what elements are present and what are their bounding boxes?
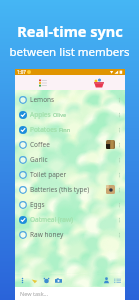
button[interactable]: Reminder [31,277,38,284]
staticText: New task... [20,290,48,297]
button[interactable]: Batteries (this type) [15,182,125,197]
button[interactable]: More options [19,277,26,284]
staticText: Finn [59,126,71,133]
button[interactable]: Toilet paper [15,167,125,182]
button[interactable]: Eggs [15,197,125,212]
button[interactable]: Apples [15,107,125,122]
staticText: between list members [9,44,130,60]
staticText: Oatmeal (raw) [30,215,74,224]
button[interactable]: Shopping basket [94,78,104,88]
button[interactable]: Oatmeal (raw) [15,212,125,227]
staticText: 1:07 [17,69,26,75]
staticText: Real-time sync [17,21,123,41]
staticText: Coffee [30,140,50,149]
staticText: Garlic [30,155,48,164]
button[interactable]: Camera [55,277,62,284]
button[interactable]: Lemons [15,92,125,107]
staticText: Eggs [30,200,45,209]
staticText: Potatoes [30,125,57,134]
button[interactable]: Sort [114,277,121,284]
staticText: Batteries (this type) [30,185,90,194]
button[interactable]: Garlic [15,152,125,167]
button[interactable]: Coffee [15,137,125,152]
button[interactable]: Potatoes [15,122,125,137]
staticText: Raw honey [30,230,64,239]
staticText: Lemons [30,95,55,104]
staticText: Toilet paper [30,170,67,179]
button[interactable]: Raw honey [15,227,125,242]
button[interactable]: Alarm [43,277,50,284]
staticText: Apples [30,110,51,119]
staticText: Olive [53,111,67,118]
button[interactable]: Members [103,277,110,284]
